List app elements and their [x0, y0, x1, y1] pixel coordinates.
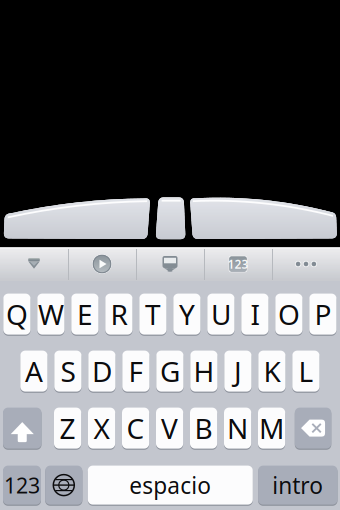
button[interactable]: Q [3, 293, 30, 335]
staticText: X [94, 409, 110, 447]
button[interactable]: Trackpad [188, 195, 340, 245]
button[interactable]: Hide keyboard [0, 247, 68, 280]
staticText: Y [179, 295, 195, 333]
button[interactable] [295, 407, 331, 449]
button[interactable]: W [37, 293, 64, 335]
staticText: H [193, 352, 214, 390]
staticText: S [60, 352, 75, 390]
button[interactable]: R [105, 293, 132, 335]
staticText: K [263, 352, 280, 390]
staticText: C [127, 409, 145, 447]
button[interactable]: espacio [88, 465, 253, 505]
button[interactable]: C [122, 407, 149, 449]
button[interactable]: L [292, 350, 319, 392]
staticText: A [25, 352, 43, 390]
staticText: N [227, 409, 248, 447]
button[interactable]: M [258, 407, 285, 449]
staticText: 123 [227, 256, 248, 272]
staticText: L [298, 352, 313, 390]
button[interactable] [45, 465, 82, 505]
staticText: P [314, 295, 331, 333]
button[interactable]: T [139, 293, 166, 335]
staticText: U [211, 295, 231, 333]
staticText: intro [272, 470, 323, 500]
button[interactable]: E [71, 293, 98, 335]
button[interactable]: O [275, 293, 302, 335]
button[interactable]: Y [173, 293, 200, 335]
button[interactable]: 123 [3, 465, 41, 505]
staticText: espacio [129, 470, 211, 500]
button[interactable]: D [88, 350, 115, 392]
button[interactable]: N [224, 407, 251, 449]
staticText: I [250, 295, 259, 333]
button[interactable]: X [88, 407, 115, 449]
staticText: J [234, 352, 242, 390]
button[interactable]: J [224, 350, 251, 392]
button[interactable]: K [258, 350, 285, 392]
staticText: 123 [4, 471, 40, 499]
staticText: F [128, 352, 143, 390]
button[interactable]: I [241, 293, 268, 335]
button[interactable]: F [122, 350, 149, 392]
staticText: Q [6, 295, 28, 333]
button[interactable]: B [190, 407, 217, 449]
button[interactable]: P [309, 293, 336, 335]
staticText: V [161, 409, 178, 447]
staticText: G [160, 352, 180, 390]
button[interactable]: U [207, 293, 234, 335]
button[interactable]: A [20, 350, 47, 392]
button[interactable]: H [190, 350, 217, 392]
staticText: B [195, 409, 213, 447]
staticText: Z [60, 409, 76, 447]
staticText: O [278, 295, 300, 333]
button[interactable]: More [272, 247, 340, 280]
button[interactable]: G [156, 350, 183, 392]
staticText: D [92, 352, 112, 390]
button[interactable] [3, 407, 41, 449]
staticText: E [77, 295, 93, 333]
staticText: W [38, 295, 64, 333]
button[interactable]: Numbers [204, 247, 272, 280]
staticText: M [259, 409, 284, 447]
button[interactable]: V [156, 407, 183, 449]
button[interactable]: S [54, 350, 81, 392]
button[interactable]: Trackpad [0, 195, 155, 245]
staticText: R [110, 295, 127, 333]
button[interactable]: Z [54, 407, 81, 449]
button[interactable]: Play [68, 247, 136, 280]
staticText: T [145, 295, 161, 333]
button[interactable]: Display [136, 247, 204, 280]
button[interactable]: intro [258, 465, 337, 505]
button[interactable]: Trackpad [150, 195, 190, 245]
